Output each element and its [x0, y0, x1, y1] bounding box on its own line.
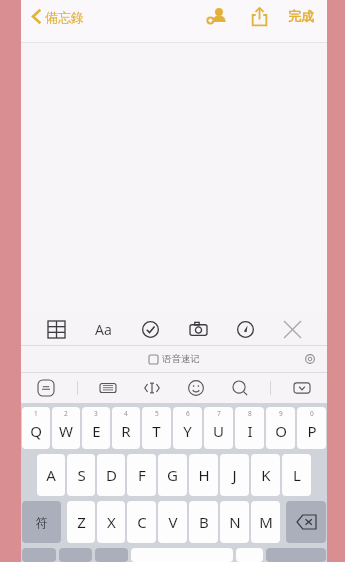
staticText: 1 [34, 409, 38, 418]
staticText: I [247, 421, 253, 441]
button[interactable]: M [251, 501, 280, 543]
button[interactable]: V [158, 501, 187, 543]
staticText: 7 [217, 409, 221, 418]
staticText: Y [183, 421, 192, 441]
button[interactable]: Format text [88, 314, 118, 344]
button[interactable]: 2 [52, 407, 80, 449]
button[interactable]: G [158, 454, 187, 496]
button[interactable]: Markup [230, 314, 260, 344]
button[interactable]: 7 [204, 407, 233, 449]
button[interactable]: Close [277, 314, 307, 344]
button[interactable]: Add people [201, 0, 233, 32]
button[interactable]: J [220, 454, 249, 496]
button[interactable]: 9 [266, 407, 295, 449]
staticText: G [167, 465, 178, 485]
button[interactable]: 4 [112, 407, 140, 449]
button[interactable]: Backspace [286, 501, 326, 543]
staticText: Z [77, 512, 86, 532]
button[interactable]: A [37, 454, 65, 496]
button[interactable]: Key [59, 548, 92, 562]
staticText: A [46, 465, 56, 485]
staticText: K [261, 465, 271, 485]
button[interactable]: Collapse [289, 375, 315, 401]
staticText: F [138, 465, 146, 485]
staticText: U [213, 421, 224, 441]
button[interactable]: 符 [22, 501, 61, 543]
button[interactable]: 完成 [283, 2, 319, 30]
staticText: 備忘錄 [45, 9, 84, 25]
staticText: 5 [155, 409, 159, 418]
staticText: J [232, 465, 237, 485]
button[interactable]: Key [22, 548, 56, 562]
button[interactable]: Share [243, 0, 275, 32]
button[interactable]: Key [236, 548, 263, 562]
staticText: Aa [95, 320, 112, 339]
button[interactable]: D [97, 454, 125, 496]
button[interactable]: Table [41, 314, 71, 344]
button[interactable]: Cursor [139, 375, 165, 401]
staticText: W [59, 421, 73, 441]
staticText: E [92, 421, 101, 441]
button[interactable]: 6 [173, 407, 202, 449]
staticText: H [198, 465, 210, 485]
staticText: 6 [186, 409, 190, 418]
staticText: 8 [248, 409, 252, 418]
button[interactable]: 1 [22, 407, 50, 449]
button[interactable]: L [282, 454, 311, 496]
staticText: S [77, 465, 86, 485]
staticText: 9 [279, 409, 283, 418]
button[interactable]: Key [266, 548, 326, 562]
button[interactable]: Settings [299, 348, 321, 370]
staticText: Q [30, 421, 42, 441]
staticText: B [199, 512, 209, 532]
button[interactable]: 3 [82, 407, 110, 449]
button[interactable]: Camera [183, 314, 213, 344]
button[interactable]: 備忘錄 [27, 2, 88, 31]
staticText: M [259, 512, 273, 532]
button[interactable]: F [127, 454, 156, 496]
staticText: 符 [36, 515, 48, 530]
button[interactable]: S [67, 454, 95, 496]
button[interactable]: Key [131, 548, 233, 562]
button[interactable]: C [127, 501, 156, 543]
button[interactable]: Key [95, 548, 128, 562]
button[interactable]: 0 [297, 407, 326, 449]
staticText: 2 [64, 409, 68, 418]
staticText: 语音速记 [162, 353, 200, 365]
button[interactable]: Keyboard [95, 375, 121, 401]
button[interactable]: Search [227, 375, 253, 401]
button[interactable]: Z [67, 501, 95, 543]
staticText: C [137, 512, 147, 532]
button[interactable]: H [189, 454, 218, 496]
staticText: 完成 [288, 8, 314, 24]
button[interactable]: 5 [142, 407, 171, 449]
button[interactable]: 语音速记 [21, 346, 327, 372]
button[interactable]: K [251, 454, 280, 496]
staticText: X [107, 512, 116, 532]
staticText: P [307, 421, 317, 441]
button[interactable]: N [220, 501, 249, 543]
staticText: T [152, 421, 161, 441]
button[interactable]: Emoji [183, 375, 209, 401]
staticText: L [293, 465, 301, 485]
button[interactable]: 8 [235, 407, 264, 449]
button[interactable]: Checklist [135, 314, 165, 344]
staticText: O [275, 421, 287, 441]
staticText: 4 [124, 409, 128, 418]
staticText: 3 [94, 409, 98, 418]
staticText: 0 [310, 409, 314, 418]
button[interactable]: B [189, 501, 218, 543]
staticText: D [106, 465, 117, 485]
staticText: N [229, 512, 241, 532]
staticText: V [168, 512, 178, 532]
staticText: R [121, 421, 131, 441]
button[interactable]: X [97, 501, 125, 543]
button[interactable]: Handwriting [33, 375, 59, 401]
